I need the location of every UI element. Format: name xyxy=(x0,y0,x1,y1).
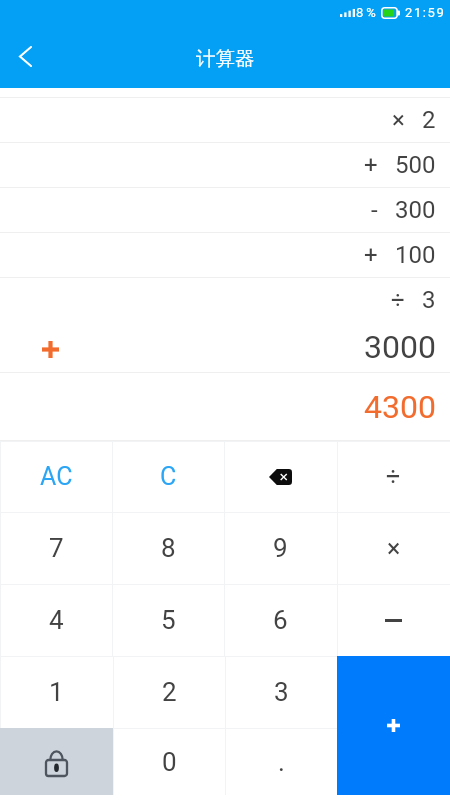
staticText: 4300 xyxy=(364,388,436,426)
button[interactable]: C xyxy=(112,441,224,512)
button[interactable]: Backspace xyxy=(224,441,337,512)
staticText: 7 xyxy=(49,533,64,563)
button[interactable]: 3 xyxy=(225,656,337,728)
staticText: 9 xyxy=(273,533,288,563)
staticText: AC xyxy=(40,462,73,491)
button[interactable]: Back xyxy=(0,28,50,84)
button[interactable]: . xyxy=(225,728,337,795)
staticText: 100 xyxy=(395,241,436,269)
staticText: . xyxy=(278,747,285,777)
staticText: + xyxy=(364,241,378,269)
staticText: 0 xyxy=(162,747,177,777)
staticText: 5 xyxy=(161,605,176,635)
button[interactable]: 0 xyxy=(113,728,225,795)
staticText: 4 xyxy=(49,605,64,635)
staticText: ÷ xyxy=(386,462,401,491)
button[interactable]: 5 xyxy=(112,584,224,656)
staticText: 3 xyxy=(422,286,436,314)
button[interactable]: Minus xyxy=(337,584,450,656)
staticText: 8 xyxy=(161,533,176,563)
button[interactable]: ÷ xyxy=(337,441,450,512)
staticText: 3000 xyxy=(364,328,436,366)
staticText: C xyxy=(160,462,177,491)
staticText: 3 xyxy=(274,677,289,707)
button[interactable]: 4 xyxy=(0,584,112,656)
button[interactable]: 6 xyxy=(224,584,337,656)
staticText: × xyxy=(392,106,405,134)
button[interactable]: 8 xyxy=(112,512,224,584)
staticText: - xyxy=(371,196,378,224)
staticText: 计算器 xyxy=(196,46,255,71)
button[interactable]: 2 xyxy=(113,656,225,728)
button[interactable]: × xyxy=(337,512,450,584)
staticText: 500 xyxy=(395,151,436,179)
staticText: 6 xyxy=(273,605,288,635)
staticText: 21:59 xyxy=(405,5,446,20)
button[interactable]: 1 xyxy=(0,656,113,728)
button[interactable]: 7 xyxy=(0,512,112,584)
staticText: 2 xyxy=(422,106,436,134)
staticText: 8% xyxy=(356,5,379,20)
button[interactable]: 9 xyxy=(224,512,337,584)
staticText: × xyxy=(387,534,401,563)
button[interactable]: Plus xyxy=(337,656,450,795)
staticText: 1 xyxy=(49,677,64,707)
staticText: 300 xyxy=(395,196,436,224)
button[interactable]: Lock xyxy=(0,728,113,795)
staticText: + xyxy=(364,151,378,179)
staticText: ÷ xyxy=(391,286,405,314)
staticText: 2 xyxy=(162,677,177,707)
button[interactable]: AC xyxy=(0,441,112,512)
